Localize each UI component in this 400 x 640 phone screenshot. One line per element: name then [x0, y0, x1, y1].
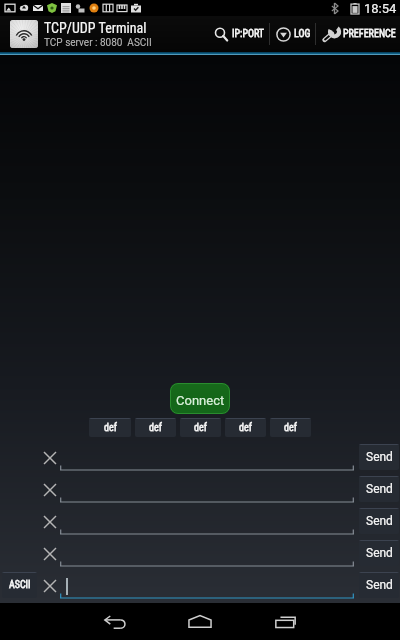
button[interactable]: Message field: [60, 451, 354, 471]
staticText: def: [284, 422, 297, 434]
button[interactable]: Message field: [60, 579, 354, 599]
staticText: Send: [366, 450, 393, 464]
staticText: Send: [366, 546, 393, 560]
button[interactable]: def: [225, 418, 266, 437]
button[interactable]: Message field: [60, 547, 354, 567]
staticText: TCP/UDP Terminal: [44, 20, 147, 36]
staticText: def: [149, 422, 162, 434]
button[interactable]: Clear: [39, 511, 61, 533]
button[interactable]: def: [270, 418, 311, 437]
staticText: Send: [366, 514, 393, 528]
button[interactable]: Send: [359, 508, 399, 534]
staticText: LOG: [294, 28, 311, 40]
button[interactable]: Home: [170, 603, 230, 640]
button[interactable]: def: [135, 418, 176, 437]
button[interactable]: Message field: [60, 483, 354, 503]
staticText: IP:PORT: [232, 28, 265, 40]
staticText: Send: [366, 578, 393, 592]
button[interactable]: LOG: [270, 16, 315, 52]
button[interactable]: IP:PORT: [208, 16, 269, 52]
button[interactable]: Recents: [255, 603, 315, 640]
button[interactable]: Send: [359, 572, 399, 598]
button[interactable]: def: [89, 418, 131, 437]
button[interactable]: Clear: [39, 447, 61, 469]
staticText: Connect: [176, 393, 225, 408]
staticText: Send: [366, 482, 393, 496]
staticText: ASCII: [9, 579, 31, 591]
button[interactable]: Send: [359, 444, 399, 470]
button[interactable]: Clear: [39, 575, 61, 597]
button[interactable]: Message field: [60, 515, 354, 535]
button[interactable]: Connect: [170, 383, 230, 414]
button[interactable]: PREFERENCE: [316, 16, 400, 52]
button[interactable]: Clear: [39, 479, 61, 501]
staticText: def: [239, 422, 252, 434]
staticText: TCP server : 8080 ASCII: [44, 37, 152, 49]
staticText: def: [194, 422, 207, 434]
button[interactable]: Clear: [39, 543, 61, 565]
staticText: def: [104, 422, 117, 434]
button[interactable]: ASCII: [2, 572, 37, 598]
button[interactable]: def: [180, 418, 221, 437]
button[interactable]: Send: [359, 540, 399, 566]
button[interactable]: Send: [359, 476, 399, 502]
button[interactable]: Back: [84, 603, 144, 640]
staticText: PREFERENCE: [343, 28, 396, 40]
staticText: 18:54: [364, 1, 397, 16]
